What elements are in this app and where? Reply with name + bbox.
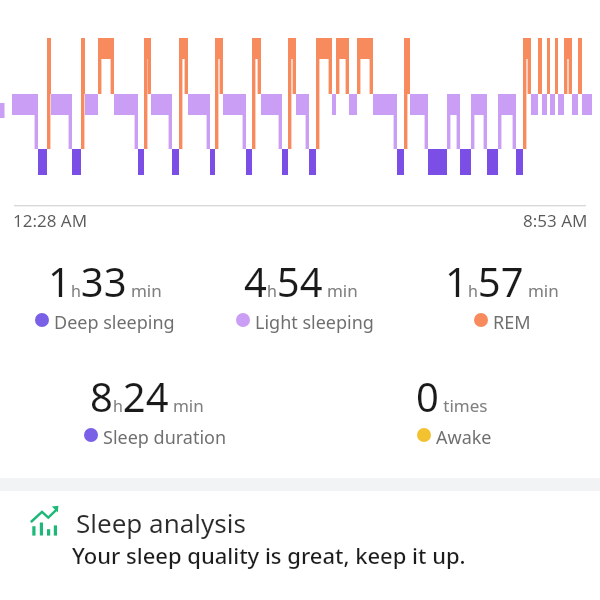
staticText: Light sleeping — [255, 310, 374, 335]
staticText: 1h33 min — [48, 254, 162, 308]
button[interactable]: Awake — [417, 425, 473, 450]
button[interactable]: Light sleeping — [236, 310, 355, 335]
staticText: 1h57 min — [445, 254, 559, 308]
button[interactable]: REM — [474, 310, 512, 335]
button[interactable]: Sleep duration — [84, 425, 208, 450]
staticText: 12:28 AM — [13, 209, 88, 232]
staticText: REM — [493, 310, 531, 335]
staticText: 8:53 AM — [523, 209, 588, 232]
button[interactable]: Deep sleeping — [35, 310, 156, 335]
staticText: Awake — [436, 425, 492, 450]
staticText: 8h24 min — [90, 369, 204, 423]
staticText: 4h54 min — [244, 254, 358, 308]
staticText: Sleep duration — [103, 425, 227, 450]
staticText: Your sleep quality is great, keep it up. — [72, 540, 466, 570]
button[interactable] — [24, 498, 444, 570]
staticText: 0 times — [416, 369, 488, 423]
staticText: Deep sleeping — [54, 310, 175, 335]
staticText: Sleep analysis — [76, 505, 246, 540]
